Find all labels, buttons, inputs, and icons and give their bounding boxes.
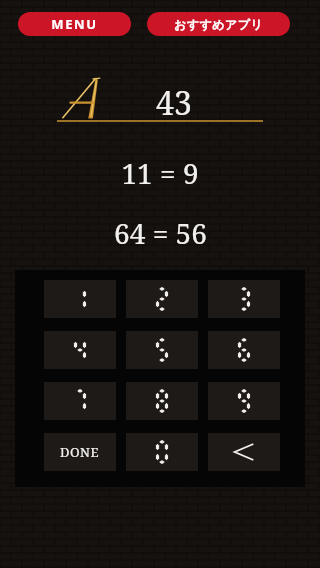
button[interactable]: 2 bbox=[126, 280, 198, 318]
staticText: 11 = 9 bbox=[121, 154, 199, 192]
button[interactable]: おすすめアプリ bbox=[147, 12, 290, 36]
button[interactable]: 0 bbox=[126, 433, 198, 471]
button[interactable]: 1 bbox=[44, 280, 116, 318]
staticText: おすすめアプリ bbox=[174, 17, 263, 32]
button[interactable]: 5 bbox=[126, 331, 198, 369]
button[interactable]: 8 bbox=[126, 382, 198, 420]
button[interactable]: MENU bbox=[18, 12, 131, 36]
button[interactable]: 4 bbox=[44, 331, 116, 369]
button[interactable]: Backspace bbox=[208, 433, 280, 471]
button[interactable]: 6 bbox=[208, 331, 280, 369]
button[interactable]: 3 bbox=[208, 280, 280, 318]
button[interactable]: 9 bbox=[208, 382, 280, 420]
staticText: 43 bbox=[156, 81, 192, 125]
staticText: DONE bbox=[60, 443, 100, 461]
staticText: 64 = 56 bbox=[114, 214, 207, 252]
staticText: MENU bbox=[51, 15, 98, 33]
button[interactable]: Done bbox=[44, 433, 116, 471]
button[interactable]: 7 bbox=[44, 382, 116, 420]
